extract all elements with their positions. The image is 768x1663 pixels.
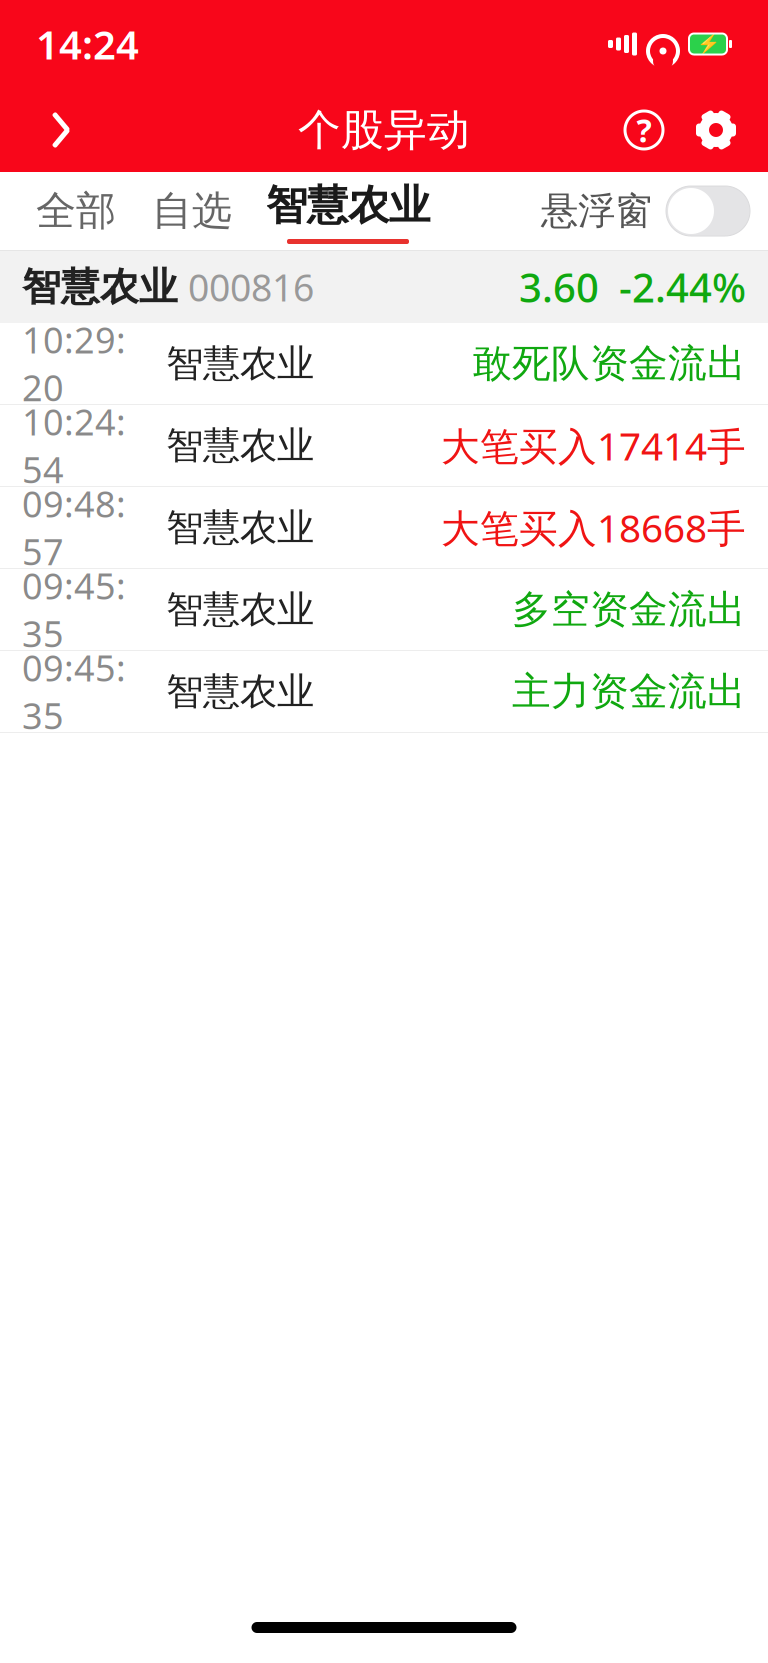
staticText: 智慧农业 bbox=[266, 180, 430, 231]
staticText: 09:45:35 bbox=[22, 644, 126, 739]
staticText: 智慧农业 bbox=[166, 423, 314, 468]
button[interactable]: 智慧农业 bbox=[250, 172, 446, 250]
staticText: 大笔买入17414手 bbox=[441, 420, 746, 471]
staticText: 全部 bbox=[36, 186, 116, 235]
button[interactable]: 返回 bbox=[26, 94, 96, 166]
staticText: 智慧农业 bbox=[22, 263, 178, 311]
staticText: ⚡ bbox=[696, 33, 719, 55]
staticText: 智慧农业 bbox=[166, 505, 314, 550]
staticText: -2.44% bbox=[599, 260, 746, 313]
staticText: 智慧农业 bbox=[166, 669, 314, 714]
staticText: 悬浮窗 bbox=[541, 188, 652, 234]
staticText: ? bbox=[636, 109, 651, 151]
staticText: 敢死队资金流出 bbox=[473, 340, 746, 387]
button[interactable]: 09:45:35 bbox=[0, 569, 768, 651]
button[interactable]: 09:48:57 bbox=[0, 487, 768, 569]
button[interactable]: 智慧农业 bbox=[0, 251, 768, 323]
button[interactable]: 设置 bbox=[690, 94, 742, 166]
button[interactable]: 悬浮窗开关 bbox=[541, 172, 750, 250]
staticText: 10:24:54 bbox=[22, 398, 126, 493]
staticText: 000816 bbox=[178, 262, 314, 312]
staticText: 个股异动 bbox=[298, 104, 470, 156]
button[interactable]: 09:45:35 bbox=[0, 651, 768, 733]
button[interactable]: 自选 bbox=[134, 172, 250, 250]
staticText: 自选 bbox=[152, 186, 232, 235]
staticText: 09:48:57 bbox=[22, 480, 126, 575]
staticText: 多空资金流出 bbox=[512, 586, 746, 633]
staticText: 3.60 bbox=[519, 260, 599, 313]
staticText: 主力资金流出 bbox=[512, 668, 746, 715]
staticText: 智慧农业 bbox=[166, 587, 314, 632]
button[interactable]: 全部 bbox=[18, 172, 134, 250]
staticText: 09:45:35 bbox=[22, 562, 126, 657]
staticText: 智慧农业 bbox=[166, 341, 314, 386]
button[interactable]: 帮助 bbox=[618, 94, 670, 166]
button[interactable]: 10:29:20 bbox=[0, 323, 768, 405]
staticText: 14:24 bbox=[36, 17, 139, 70]
staticText: 大笔买入18668手 bbox=[441, 502, 746, 553]
staticText: 10:29:20 bbox=[22, 316, 126, 411]
button[interactable]: 10:24:54 bbox=[0, 405, 768, 487]
